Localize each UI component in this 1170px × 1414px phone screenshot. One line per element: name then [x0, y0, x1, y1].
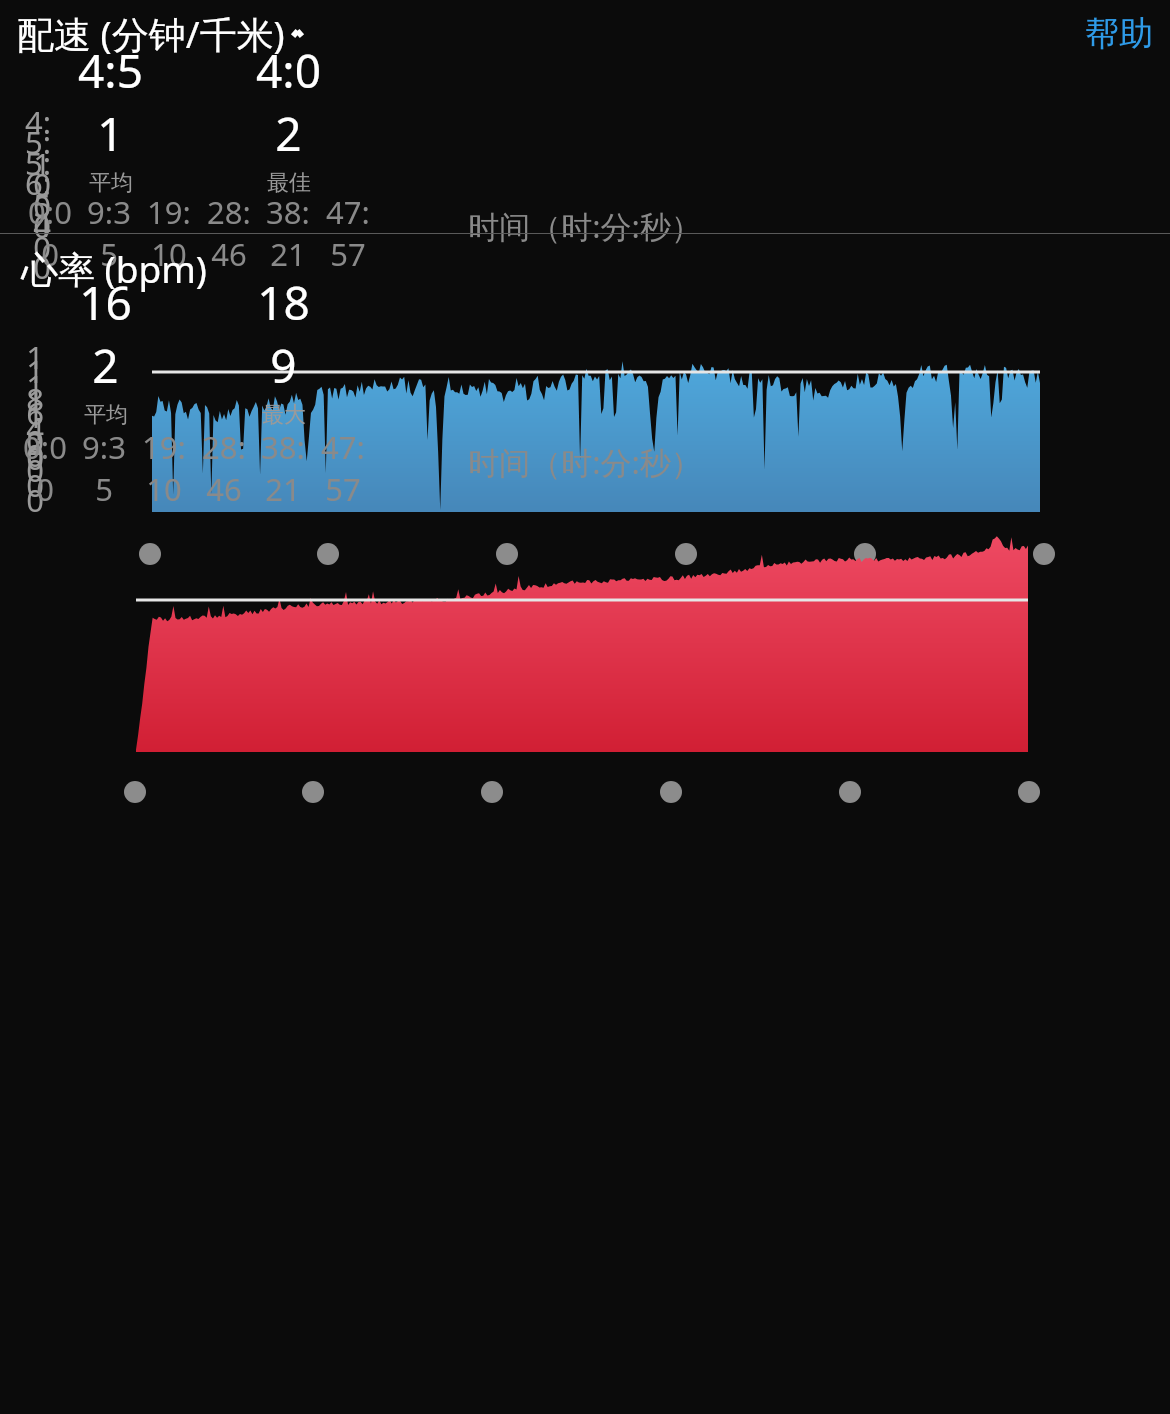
- staticText: 47:57: [318, 426, 368, 510]
- button[interactable]: 帮助: [1085, 12, 1153, 55]
- staticText: 时间（时:分:秒）: [0, 205, 1170, 247]
- staticText: 120: [17, 380, 44, 506]
- staticText: 9:35: [79, 426, 129, 510]
- button[interactable]: 心率 (bpm): [21, 243, 207, 294]
- staticText: 38:21: [263, 191, 313, 275]
- staticText: 9:35: [84, 191, 134, 275]
- staticText: 160: [17, 350, 44, 476]
- staticText: 100: [17, 395, 44, 521]
- staticText: 162: [69, 271, 142, 397]
- staticText: 0:00: [20, 426, 70, 510]
- staticText: 189: [247, 271, 320, 397]
- staticText: 47:57: [323, 191, 373, 275]
- staticText: 最佳: [267, 169, 311, 197]
- staticText: 4:02: [252, 39, 325, 165]
- staticText: 4:51: [74, 39, 147, 165]
- staticText: 5:50: [21, 142, 51, 268]
- staticText: 180: [17, 336, 44, 462]
- staticText: 19:10: [139, 426, 189, 510]
- other: 展开配速选项: [291, 29, 304, 38]
- staticText: 配速 (分钟/千米): [17, 8, 285, 59]
- staticText: 19:10: [144, 191, 194, 275]
- staticText: 5:00: [21, 121, 51, 247]
- staticText: 140: [17, 365, 44, 491]
- staticText: 最大: [262, 401, 306, 429]
- staticText: 帮助: [1085, 12, 1153, 55]
- staticText: 心率 (bpm): [21, 243, 207, 294]
- staticText: 6:40: [21, 162, 51, 288]
- staticText: 28:46: [204, 191, 254, 275]
- staticText: 38:21: [258, 426, 308, 510]
- staticText: 4:10: [21, 101, 51, 227]
- staticText: 0:00: [25, 191, 75, 275]
- staticText: 28:46: [199, 426, 249, 510]
- button[interactable]: 配速 (分钟/千米): [17, 8, 304, 59]
- staticText: 平均: [84, 401, 128, 429]
- staticText: 时间（时:分:秒）: [0, 441, 1170, 483]
- staticText: 平均: [89, 169, 133, 197]
